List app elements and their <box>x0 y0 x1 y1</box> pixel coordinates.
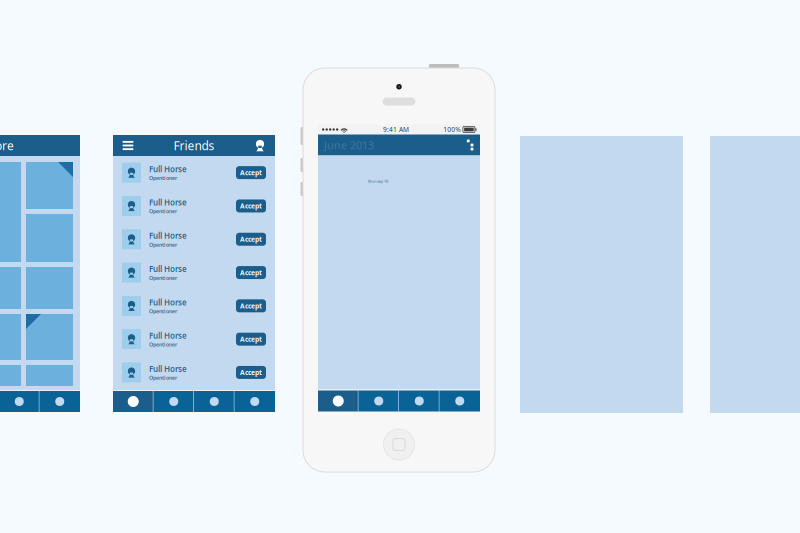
button[interactable]: Tab 4 <box>39 391 80 412</box>
button[interactable]: Tab 1 <box>318 390 358 411</box>
staticText: June 2013 <box>324 138 374 152</box>
staticText: Accept <box>240 235 262 244</box>
button[interactable]: Profile <box>250 135 270 156</box>
staticText: Full Horse <box>149 330 187 341</box>
staticText: Full Horse <box>149 197 187 208</box>
staticText: Opentioner <box>149 208 177 215</box>
button[interactable]: Accept <box>236 299 266 312</box>
staticText: Opentioner <box>149 174 177 181</box>
staticText: Opentioner <box>149 341 177 348</box>
staticText: Full Horse <box>149 297 187 308</box>
button[interactable]: Accept <box>236 199 266 212</box>
staticText: Accept <box>240 168 262 177</box>
staticText: Accept <box>240 335 262 344</box>
button[interactable]: Menu <box>118 135 138 156</box>
staticText: Full Horse <box>149 164 187 174</box>
staticText: Accept <box>240 268 262 277</box>
button[interactable]: Accept <box>236 366 266 379</box>
staticText: Full Horse <box>149 364 187 374</box>
staticText: 100% <box>443 125 461 134</box>
button[interactable]: Layout options <box>464 134 480 155</box>
staticText: Full Horse <box>149 264 187 274</box>
staticText: Accept <box>240 201 262 210</box>
staticText: Monday 18 <box>368 178 388 184</box>
button[interactable]: Tab 3 <box>0 391 39 412</box>
staticText: Accept <box>240 301 262 310</box>
button[interactable]: Tab 3 <box>399 390 439 411</box>
button[interactable]: Accept <box>236 166 266 179</box>
button[interactable]: Tab 4 <box>234 391 275 412</box>
button[interactable]: Tab 2 <box>358 390 399 411</box>
button[interactable]: Tab 3 <box>194 391 234 412</box>
staticText: Friends <box>173 137 214 153</box>
staticText: Opentioner <box>149 374 177 381</box>
button[interactable]: Tab 4 <box>439 390 480 411</box>
staticText: Opentioner <box>149 274 177 281</box>
staticText: Opentioner <box>149 308 177 315</box>
staticText: 9:41 AM <box>383 125 409 134</box>
staticText: Accept <box>240 368 262 377</box>
staticText: Store <box>0 137 14 153</box>
staticText: Opentioner <box>149 241 177 248</box>
button[interactable]: Accept <box>236 333 266 346</box>
button[interactable]: Accept <box>236 266 266 279</box>
button[interactable]: Tab 1 <box>113 391 153 412</box>
button[interactable]: Accept <box>236 233 266 246</box>
button[interactable]: Tab 2 <box>153 391 194 412</box>
staticText: Full Horse <box>149 230 187 241</box>
